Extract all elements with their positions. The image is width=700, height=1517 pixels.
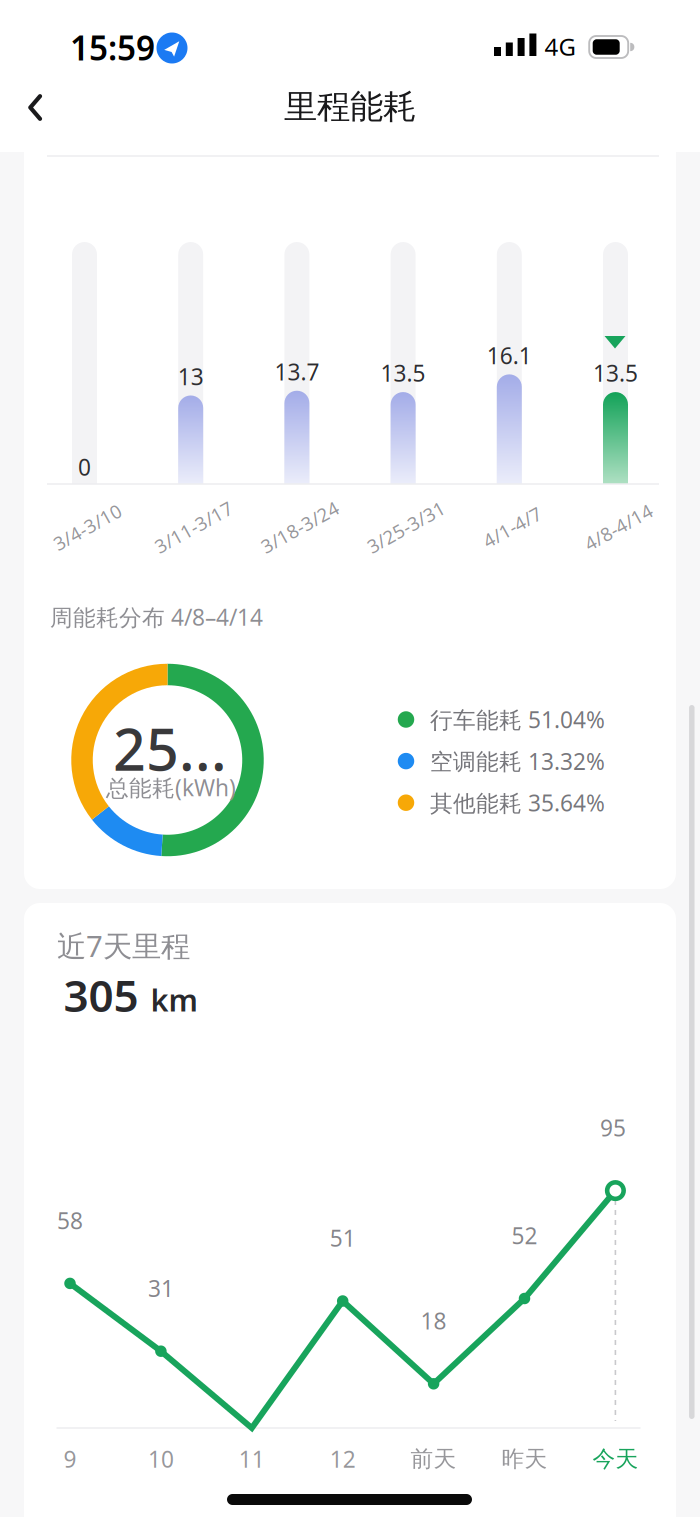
staticText: 4/8-4/14 (581, 515, 656, 539)
staticText: 前天 (411, 1445, 457, 1473)
staticText: km (150, 979, 197, 1020)
staticText: 今天 (592, 1445, 638, 1473)
staticText: 12 (330, 1444, 356, 1474)
staticText: 0 (78, 452, 91, 482)
staticText: 95 (600, 1112, 626, 1143)
button[interactable]: Back (12, 87, 64, 128)
staticText: 3/4-3/10 (50, 515, 125, 539)
staticText: 13.5 (381, 358, 426, 388)
staticText: 周能耗分布 4/8–4/14 (50, 602, 263, 632)
staticText: 13 (178, 361, 204, 391)
staticText: 305 (63, 966, 138, 1024)
staticText: 13.5 (593, 358, 638, 388)
staticText: 16.1 (487, 340, 532, 370)
staticText: 58 (57, 1205, 83, 1235)
staticText: 3/25-3/31 (363, 515, 449, 539)
staticText: 15:59 (70, 25, 155, 70)
staticText: 51 (330, 1223, 356, 1253)
staticText: 11 (239, 1444, 265, 1474)
staticText: 4G (544, 31, 575, 62)
staticText: 25... (113, 710, 227, 786)
staticText: 总能耗(kWh) (106, 772, 236, 802)
staticText: 3/11-3/17 (151, 515, 237, 539)
staticText: 31 (148, 1273, 174, 1303)
staticText: 13.7 (274, 357, 319, 387)
staticText: 近7天里程 (57, 926, 190, 965)
staticText: 昨天 (501, 1445, 547, 1473)
staticText: 18 (421, 1306, 447, 1336)
staticText: 52 (511, 1220, 537, 1250)
staticText: 4/1-4/7 (480, 515, 544, 539)
staticText: 行车能耗 51.04% (430, 704, 605, 734)
staticText: 空调能耗 13.32% (430, 746, 605, 776)
staticText: 3/18-3/24 (257, 515, 343, 539)
staticText: 里程能耗 (284, 86, 416, 127)
staticText: 其他能耗 35.64% (430, 788, 605, 818)
staticText: 10 (148, 1444, 174, 1474)
staticText: 9 (63, 1444, 76, 1474)
